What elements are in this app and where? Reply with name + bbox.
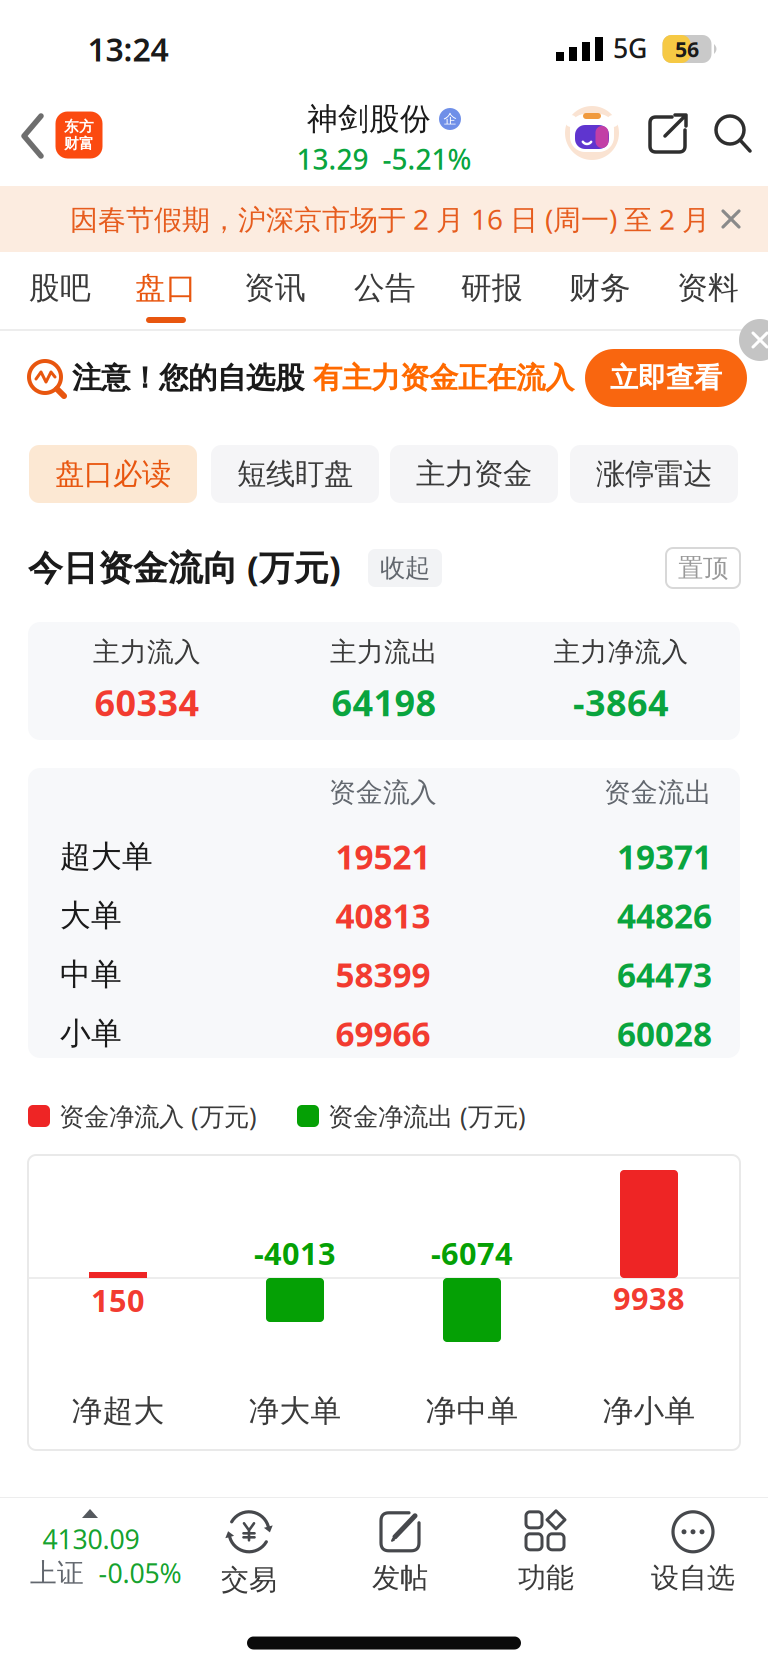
staticText: 中单 — [60, 956, 122, 993]
staticText: 神剑股份 — [307, 100, 431, 138]
button[interactable]: 返回 — [11, 108, 55, 164]
staticText: 64198 — [331, 678, 436, 726]
staticText: 有主力资金正在流入 — [304, 360, 574, 396]
staticText: -3864 — [573, 678, 669, 726]
staticText: 主力净流入 — [553, 636, 688, 668]
button[interactable]: 涨停雷达 — [570, 445, 738, 503]
staticText: 立即查看 — [610, 361, 722, 395]
staticText: 财富 — [64, 134, 94, 152]
button[interactable]: 收起 — [368, 549, 442, 587]
staticText: 公告 — [354, 269, 416, 307]
button[interactable]: 立即查看 — [585, 349, 747, 407]
staticText: 60334 — [94, 678, 199, 726]
staticText: 资金净流入 (万元) — [59, 1099, 257, 1133]
staticText: 13.29 — [296, 140, 368, 178]
button[interactable]: 研报 — [442, 253, 542, 323]
staticText: 功能 — [518, 1561, 574, 1595]
button[interactable]: 置顶 — [666, 548, 740, 588]
button[interactable]: 主力资金 — [390, 445, 558, 503]
staticText: 资讯 — [244, 269, 306, 307]
staticText: 今日资金流向 (万元) — [28, 544, 341, 590]
staticText: 研报 — [461, 269, 523, 307]
staticText: 13:24 — [87, 28, 168, 70]
staticText: 净大单 — [248, 1392, 341, 1430]
staticText: 资金净流出 (万元) — [328, 1099, 526, 1133]
button[interactable]: 交易 — [184, 1500, 314, 1604]
button[interactable]: 东方财富 — [55, 111, 102, 158]
staticText: 东方 — [64, 117, 94, 135]
staticText: 大单 — [60, 897, 122, 934]
staticText: 交易 — [221, 1563, 277, 1597]
staticText: -6074 — [431, 1233, 513, 1273]
staticText: 19521 — [335, 834, 430, 879]
staticText: 股吧 — [29, 269, 91, 307]
button[interactable]: 资讯 — [225, 253, 325, 323]
button[interactable]: 盘口必读 — [29, 445, 197, 503]
button[interactable]: 盘口 — [116, 253, 216, 323]
staticText: 9938 — [613, 1278, 685, 1318]
staticText: -0.05% — [98, 1555, 181, 1591]
staticText: 置顶 — [678, 552, 728, 583]
staticText: 资金流出 — [604, 776, 712, 809]
button[interactable]: 搜索 — [713, 114, 753, 154]
button[interactable]: 公告 — [335, 253, 435, 323]
staticText: 64473 — [617, 952, 712, 997]
staticText: 短线盯盘 — [237, 456, 353, 492]
staticText: 企 — [443, 111, 456, 127]
staticText: 44826 — [617, 893, 712, 938]
staticText: 5G — [613, 30, 647, 66]
staticText: 60028 — [617, 1011, 712, 1056]
staticText: 超大单 — [60, 838, 153, 875]
staticText: 涨停雷达 — [596, 456, 712, 492]
staticText: 资料 — [677, 269, 739, 307]
button[interactable]: 短线盯盘 — [211, 445, 379, 503]
staticText: 资金流入 — [329, 776, 437, 809]
staticText: 69966 — [335, 1011, 430, 1056]
staticText: 主力资金 — [416, 456, 532, 492]
button[interactable]: 关闭 — [720, 208, 742, 230]
staticText: 净小单 — [602, 1392, 695, 1430]
staticText: 因春节假期，沪深京市场于 2 月 16 日 (周一) 至 2 月 — [70, 200, 710, 238]
staticText: 上证 — [30, 1557, 84, 1589]
staticText: 净超大 — [71, 1392, 164, 1430]
staticText: 发帖 — [372, 1561, 428, 1595]
button[interactable]: 关闭提示 — [739, 319, 768, 361]
staticText: 150 — [91, 1280, 145, 1320]
staticText: 40813 — [335, 893, 430, 938]
button[interactable]: 分享 — [648, 114, 688, 154]
staticText: 净中单 — [425, 1392, 518, 1430]
staticText: -4013 — [254, 1233, 336, 1273]
button[interactable]: 股吧 — [10, 253, 110, 323]
staticText: 盘口必读 — [55, 456, 171, 492]
button[interactable]: 4130.09 — [2, 1500, 198, 1604]
button[interactable]: 发帖 — [335, 1500, 465, 1604]
staticText: 主力流入 — [93, 636, 201, 668]
button[interactable]: 设自选 — [628, 1500, 758, 1604]
staticText: 主力流出 — [330, 636, 438, 668]
staticText: 56 — [675, 35, 699, 63]
staticText: 4130.09 — [42, 1521, 139, 1557]
staticText: 设自选 — [651, 1561, 735, 1595]
staticText: 盘口 — [135, 269, 197, 307]
button[interactable]: 资料 — [658, 253, 758, 323]
staticText: 小单 — [60, 1015, 122, 1052]
staticText: 19371 — [617, 834, 712, 879]
button[interactable]: 智能助手 — [564, 105, 620, 161]
button[interactable]: 功能 — [481, 1500, 611, 1604]
staticText: 58399 — [335, 952, 430, 997]
staticText: 财务 — [569, 269, 631, 307]
button[interactable]: 财务 — [550, 253, 650, 323]
staticText: 注意！您的自选股 — [72, 360, 304, 396]
staticText: 收起 — [380, 552, 430, 583]
staticText: -5.21% — [382, 140, 471, 178]
